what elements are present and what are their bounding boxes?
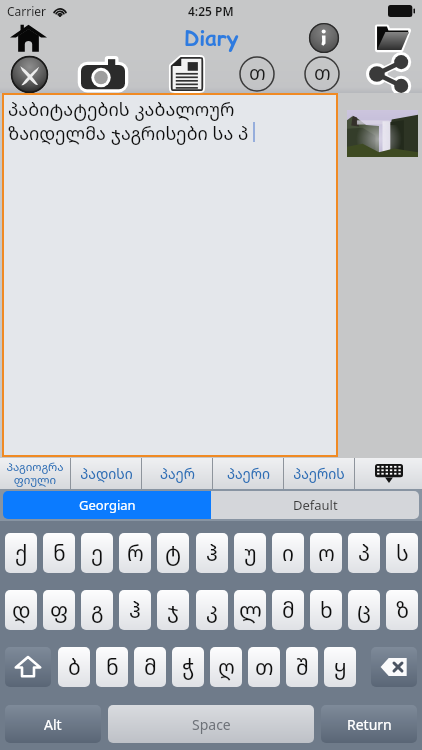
button[interactable]: Note	[166, 55, 208, 93]
staticText: ჰ	[206, 539, 218, 568]
button[interactable]: Alt	[5, 705, 101, 743]
staticText: პაერის	[293, 464, 345, 483]
button[interactable]: პაგიოგრა ფიული	[0, 458, 70, 489]
button[interactable]: Clear text	[8, 55, 50, 93]
staticText: ჯ	[167, 596, 179, 625]
button[interactable]: Default	[211, 491, 419, 519]
staticText: შ	[296, 653, 309, 682]
button[interactable]: ნ	[96, 647, 128, 687]
button[interactable]: Open folder	[372, 22, 414, 54]
staticText: უ	[244, 539, 257, 568]
button[interactable]: Attached photo	[347, 110, 418, 157]
staticText: ლ	[239, 596, 262, 625]
button[interactable]: დ	[5, 590, 37, 630]
button[interactable]: ც	[348, 590, 380, 630]
button[interactable]: ჰ	[196, 533, 228, 573]
button[interactable]: Shift	[5, 647, 51, 687]
staticText: პადისი	[80, 464, 133, 483]
staticText: გ	[91, 596, 104, 625]
button[interactable]: Font style 2	[301, 55, 343, 93]
staticText: რ	[127, 539, 144, 568]
staticText: ნ	[106, 653, 119, 682]
staticText: ჰ	[129, 596, 141, 625]
button[interactable]: ფ	[43, 590, 75, 630]
staticText: პაგიოგრა ფიული	[6, 459, 64, 488]
staticText: ფ	[50, 596, 69, 625]
staticText: ბ	[68, 653, 81, 682]
staticText: მ	[282, 596, 295, 625]
button[interactable]: ბ	[58, 647, 90, 687]
staticText: ც	[357, 596, 371, 625]
button[interactable]: ღ	[210, 647, 242, 687]
button[interactable]: ე	[81, 533, 113, 573]
button[interactable]: პ	[348, 533, 380, 573]
staticText: Space	[192, 715, 231, 734]
button[interactable]: უ	[234, 533, 266, 573]
button[interactable]: ჯ	[157, 590, 189, 630]
button[interactable]: Backspace	[371, 647, 417, 687]
staticText: ყ	[334, 653, 347, 682]
staticText: პაერი	[227, 464, 270, 483]
staticText: ქ	[15, 539, 28, 568]
button[interactable]: Camera	[76, 55, 130, 93]
staticText: ღ	[218, 653, 235, 682]
staticText: პ	[358, 539, 371, 568]
button[interactable]: რ	[119, 533, 151, 573]
button[interactable]: ნ	[43, 533, 75, 573]
button[interactable]: თ	[248, 647, 280, 687]
staticText: Alt	[44, 715, 62, 734]
button[interactable]: Info	[308, 22, 340, 54]
button[interactable]: ხ	[310, 590, 342, 630]
button[interactable]: მ	[134, 647, 166, 687]
button[interactable]: პაერის	[284, 458, 354, 489]
staticText: ი	[282, 539, 295, 568]
staticText: ე	[91, 539, 104, 568]
staticText: Diary	[184, 24, 239, 53]
button[interactable]: პაერი	[213, 458, 283, 489]
staticText: Default	[293, 496, 338, 514]
button[interactable]: ს	[386, 533, 418, 573]
staticText: ო	[318, 539, 335, 568]
staticText: თ	[249, 60, 266, 86]
button[interactable]: ქ	[5, 533, 37, 573]
button[interactable]: კ	[196, 590, 228, 630]
staticText: 4:25 PM	[188, 3, 234, 19]
button[interactable]: ტ	[157, 533, 189, 573]
staticText: ნ	[53, 539, 66, 568]
button[interactable]: Share	[362, 55, 416, 93]
button[interactable]: Space	[108, 705, 314, 743]
button[interactable]: Home	[8, 22, 48, 54]
staticText: Return	[347, 715, 392, 734]
staticText: ტ	[165, 539, 182, 568]
button[interactable]: პაბიტატების კაბალოურ ზაიდელმა ჯაგრისები …	[2, 93, 338, 457]
button[interactable]: პადისი	[71, 458, 141, 489]
button[interactable]: პაერ	[142, 458, 212, 489]
staticText: ხ	[320, 596, 333, 625]
staticText: ჭ	[182, 653, 195, 682]
button[interactable]: Georgian	[3, 491, 211, 519]
button[interactable]: Return	[321, 705, 417, 743]
staticText: ს	[396, 539, 409, 568]
button[interactable]: ო	[310, 533, 342, 573]
button[interactable]: ზ	[386, 590, 418, 630]
staticText: ზ	[396, 596, 409, 625]
button[interactable]: მ	[272, 590, 304, 630]
button[interactable]: ყ	[324, 647, 356, 687]
staticText: Carrier	[7, 3, 47, 19]
staticText: თ	[314, 60, 331, 86]
staticText: კ	[206, 596, 218, 625]
button[interactable]: Hide keyboard	[355, 458, 422, 489]
button[interactable]: Font style 1	[236, 55, 278, 93]
staticText: Georgian	[79, 496, 136, 514]
staticText: პაბიტატების კაბალოურ ზაიდელმა ჯაგრისები …	[8, 97, 334, 145]
staticText: თ	[255, 653, 274, 682]
button[interactable]: შ	[286, 647, 318, 687]
button[interactable]: გ	[81, 590, 113, 630]
button[interactable]: ჰ	[119, 590, 151, 630]
staticText: დ	[12, 596, 31, 625]
button[interactable]: ი	[272, 533, 304, 573]
button[interactable]: ჭ	[172, 647, 204, 687]
staticText: პაერ	[160, 464, 195, 483]
button[interactable]: ლ	[234, 590, 266, 630]
staticText: მ	[144, 653, 157, 682]
